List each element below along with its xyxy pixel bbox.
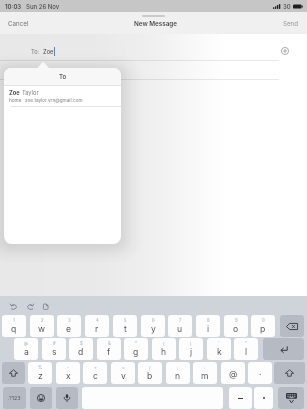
staticText: h (161, 347, 167, 357)
staticText: home (9, 97, 22, 103)
staticText: 2 (41, 318, 44, 323)
staticText: ( (163, 341, 165, 346)
staticText: b (147, 371, 153, 381)
staticText: Taylor (22, 89, 39, 96)
staticText: f (107, 347, 111, 357)
button[interactable]: $ (69, 338, 93, 360)
staticText: p (260, 324, 266, 334)
button[interactable]: * (124, 338, 148, 360)
button[interactable]: 5 (113, 315, 137, 337)
button[interactable]: 2 (30, 315, 54, 337)
button[interactable]: dismiss (278, 387, 304, 409)
staticText: zoe.taylor.vrn@gmail.com (25, 97, 83, 103)
button[interactable]: 6 (141, 315, 165, 337)
staticText: z (38, 371, 43, 381)
button[interactable]: / (138, 362, 162, 384)
staticText: e (66, 324, 72, 334)
button[interactable]: 8 (196, 315, 220, 337)
button[interactable]: Undo (6, 299, 21, 314)
staticText: a (24, 347, 29, 357)
staticText: k (217, 347, 222, 357)
button[interactable]: dot (254, 387, 273, 409)
button[interactable]: shiftR (274, 362, 305, 384)
button[interactable]: ) (179, 338, 203, 360)
staticText: l (245, 347, 248, 357)
button[interactable]: : (193, 362, 217, 384)
staticText: n (175, 371, 181, 381)
button[interactable]: bksp (280, 315, 304, 337)
button[interactable]: Cancel (0, 16, 39, 31)
staticText: 9 (235, 318, 238, 323)
button[interactable]: " (234, 338, 258, 360)
button[interactable]: Send (273, 16, 307, 31)
staticText: r (95, 324, 99, 334)
button[interactable]: 4 (85, 315, 109, 337)
button[interactable]: Paste (38, 299, 53, 314)
button[interactable]: ret (263, 338, 304, 360)
button[interactable]: 1 (2, 315, 26, 337)
staticText: c (93, 371, 98, 381)
staticText: 5 (124, 318, 127, 323)
staticText: * (135, 341, 138, 346)
staticText: Zoe (9, 89, 20, 96)
button[interactable]: ( (152, 338, 176, 360)
staticText: .?123 (8, 395, 21, 402)
staticText: New Message (134, 20, 178, 28)
button[interactable]: Redo (23, 299, 38, 314)
staticText: / (149, 365, 151, 370)
staticText: v (121, 371, 126, 381)
staticText: q (11, 324, 17, 334)
staticText: 8 (207, 318, 210, 323)
staticText: & (108, 341, 111, 346)
staticText: t (124, 324, 127, 334)
staticText: s (52, 347, 57, 357)
staticText: Send (283, 20, 299, 28)
button[interactable]: · (248, 362, 272, 384)
staticText: w (38, 324, 46, 334)
button[interactable]: mic (56, 387, 78, 409)
button[interactable]: shiftL (2, 362, 25, 384)
button[interactable]: # (42, 338, 66, 360)
button[interactable]: = (111, 362, 135, 384)
button[interactable]: @ (14, 338, 38, 360)
button[interactable]: dash (229, 387, 252, 409)
staticText: To: (31, 48, 40, 55)
button[interactable]: ' (207, 338, 231, 360)
staticText: # (53, 341, 56, 346)
button[interactable]: 7 (168, 315, 192, 337)
staticText: @ (24, 341, 29, 346)
button[interactable]: ; (166, 362, 190, 384)
staticText: d (78, 347, 84, 357)
staticText: + (94, 365, 97, 370)
staticText: " (245, 341, 247, 346)
staticText: Zoe (43, 48, 54, 55)
button[interactable]: .?123 (3, 387, 26, 409)
button[interactable]: Add contact (277, 43, 293, 59)
staticText: u (177, 324, 183, 334)
button[interactable]: 3 (57, 315, 81, 337)
button[interactable]: Zoe (4, 86, 121, 106)
staticText: Sun 26 Nov (26, 3, 60, 10)
staticText: Cancel (8, 20, 29, 28)
staticText: % (38, 365, 43, 370)
button[interactable]: 9 (224, 315, 248, 337)
staticText: j (190, 347, 193, 357)
staticText: x (66, 371, 71, 381)
staticText: 1 (13, 318, 15, 323)
staticText: 3 (68, 318, 71, 323)
staticText: ' (218, 341, 220, 346)
staticText: 7 (179, 318, 182, 323)
button[interactable]: & (97, 338, 121, 360)
button[interactable]: emoji (30, 387, 52, 409)
staticText: - (67, 365, 69, 370)
button[interactable]: + (83, 362, 107, 384)
staticText: 0 (262, 318, 265, 323)
button[interactable]: @ (221, 362, 245, 384)
staticText: · (259, 369, 262, 379)
button[interactable]: 0 (251, 315, 275, 337)
button[interactable]: - (56, 362, 80, 384)
button[interactable]: % (28, 362, 52, 384)
staticText: g (133, 347, 139, 357)
staticText: = (122, 365, 125, 370)
